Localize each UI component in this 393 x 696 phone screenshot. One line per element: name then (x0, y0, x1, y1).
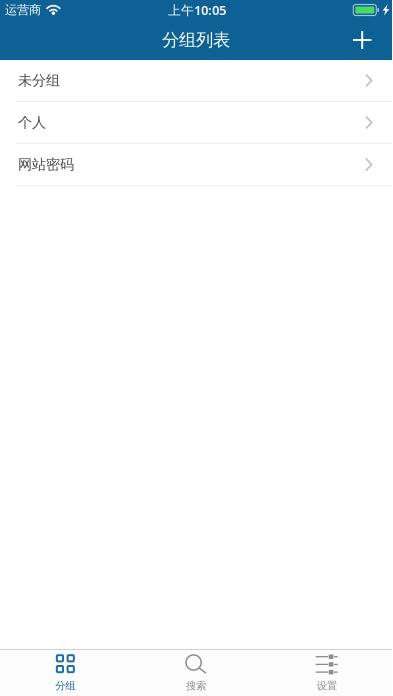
button[interactable]: 未分组 (0, 60, 392, 102)
button[interactable]: 搜索 (131, 648, 261, 696)
button[interactable]: 设置 (261, 648, 392, 696)
staticText: 个人 (18, 114, 46, 131)
button[interactable]: 网站密码 (0, 144, 392, 186)
staticText: 网站密码 (18, 156, 74, 173)
staticText: 未分组 (18, 72, 60, 89)
button[interactable]: Add (338, 20, 392, 59)
button[interactable]: 个人 (0, 102, 392, 144)
staticText: 分组 (55, 679, 75, 692)
button[interactable]: 分组 (0, 648, 131, 696)
staticText: 运营商 (5, 2, 41, 18)
staticText: 搜索 (186, 679, 206, 692)
staticText: 上午10:05 (168, 1, 226, 19)
staticText: 分组列表 (162, 29, 230, 51)
staticText: 设置 (317, 679, 337, 692)
